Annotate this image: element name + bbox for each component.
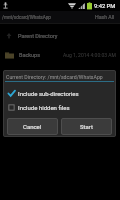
staticText: 9:42 PM [94, 3, 116, 10]
staticText: Start [80, 123, 93, 130]
staticText: Backups [19, 52, 41, 58]
staticText: Current Directory: /mnt/sdcard/WhatsApp [6, 74, 103, 80]
button[interactable]: Backups [0, 45, 120, 65]
button[interactable]: Start [61, 118, 112, 135]
staticText: Parent Directory [18, 33, 58, 39]
staticText: Include sub-directories [18, 90, 79, 97]
staticText: Hash All [95, 14, 115, 20]
staticText: /mnt/sdcard/WhatsApp [2, 15, 91, 20]
button[interactable]: Include sub-directories [3, 86, 116, 100]
button[interactable]: Parent Directory [0, 26, 120, 45]
button[interactable]: Hash All [91, 11, 120, 23]
button[interactable]: Include hidden files [3, 100, 116, 114]
button[interactable]: Cancel [7, 118, 58, 135]
staticText: Include hidden files [18, 104, 70, 111]
staticText: Cancel [23, 123, 42, 130]
staticText: Aug 1, 2014 4:00:03 AM [63, 52, 116, 58]
